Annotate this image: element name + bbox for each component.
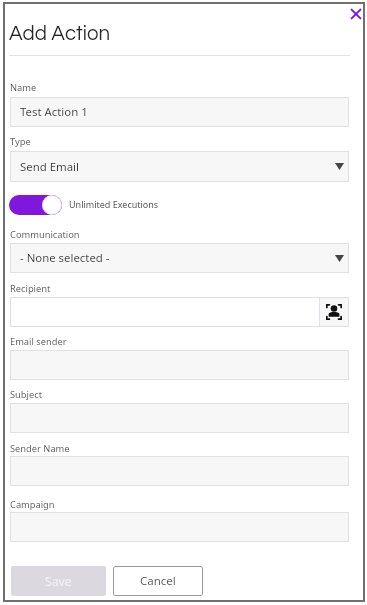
button[interactable]	[10, 403, 349, 433]
button[interactable]: Save	[11, 566, 106, 596]
button[interactable]: Close	[344, 2, 367, 26]
button[interactable]	[10, 297, 349, 327]
button[interactable]: Pick contact	[319, 297, 349, 327]
button[interactable]: Send Email	[10, 151, 349, 182]
staticText: Type	[10, 135, 31, 148]
button[interactable]: - None selected -	[10, 243, 349, 273]
staticText: Subject	[10, 388, 43, 401]
button[interactable]: Cancel	[113, 566, 203, 596]
button[interactable]	[10, 512, 349, 542]
button[interactable]	[10, 350, 349, 380]
staticText: Recipient	[10, 282, 51, 295]
staticText: Send Email	[20, 159, 79, 175]
staticText: Name	[10, 81, 37, 94]
staticText: Save	[45, 573, 72, 590]
staticText: Email sender	[10, 335, 67, 348]
button[interactable]	[10, 456, 349, 486]
staticText: Sender Name	[10, 442, 70, 455]
staticText: Unlimited Executions	[69, 198, 159, 210]
staticText: Cancel	[140, 573, 176, 589]
button[interactable]: Unlimited Executions	[9, 195, 159, 215]
staticText: Communication	[10, 228, 80, 241]
staticText: Campaign	[10, 498, 55, 511]
button[interactable]: Test Action 1	[10, 97, 349, 127]
staticText: Add Action	[9, 23, 111, 44]
staticText: - None selected -	[20, 250, 110, 266]
staticText: Test Action 1	[20, 104, 88, 120]
